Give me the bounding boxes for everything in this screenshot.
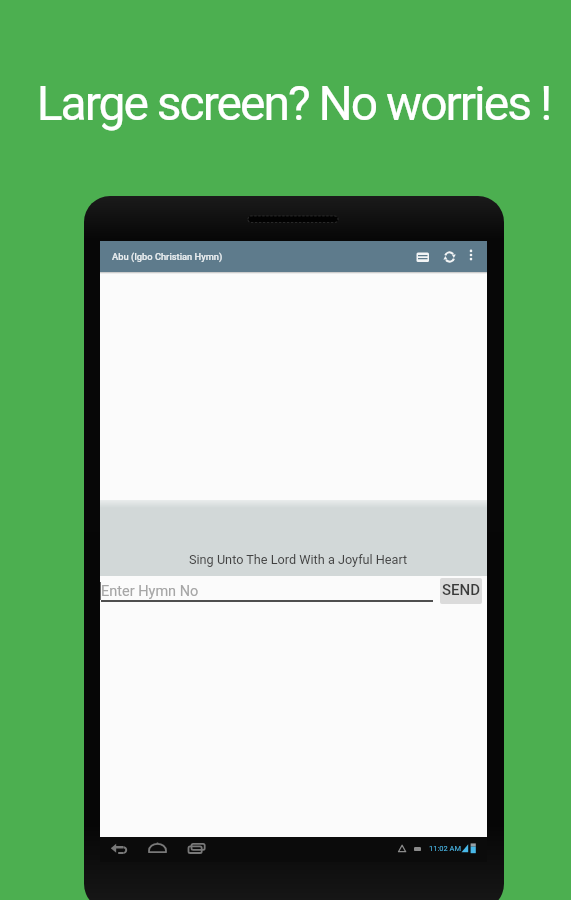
staticText: SEND	[442, 581, 480, 599]
button[interactable]	[145, 837, 170, 862]
button[interactable]	[108, 837, 132, 862]
button[interactable]: SEND	[440, 578, 482, 604]
staticText: Enter Hymn No	[101, 583, 199, 600]
staticText: Sing Unto The Lord With a Joyful Heart	[189, 552, 408, 567]
button[interactable]: Enter Hymn No	[100, 578, 434, 604]
staticText: Abu (Igbo Christian Hymn)	[112, 251, 223, 262]
staticText: Large screen? No worries !	[8, 75, 571, 131]
button[interactable]	[462, 244, 481, 270]
button[interactable]	[437, 244, 462, 270]
staticText: 11:02 AM	[429, 844, 461, 853]
button[interactable]	[184, 837, 209, 862]
button[interactable]	[410, 244, 436, 270]
